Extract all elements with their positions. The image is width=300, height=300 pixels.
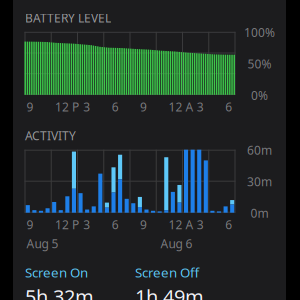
- staticText: 9: [26, 217, 33, 233]
- staticText: 100%: [244, 24, 275, 40]
- staticText: 1h 49m: [135, 283, 204, 300]
- staticText: BATTERY LEVEL: [25, 10, 111, 26]
- staticText: 0%: [251, 87, 268, 103]
- staticText: 0m: [250, 205, 268, 221]
- staticText: 9: [140, 99, 147, 115]
- staticText: 12 A: [168, 99, 193, 115]
- staticText: 30m: [247, 174, 272, 190]
- staticText: 60m: [247, 142, 272, 158]
- staticText: 3: [197, 99, 204, 115]
- staticText: 9: [26, 99, 33, 115]
- staticText: 12 A: [168, 217, 193, 233]
- staticText: Aug 5: [26, 236, 58, 251]
- staticText: 12 P: [55, 99, 79, 115]
- staticText: Screen On: [25, 264, 88, 281]
- button[interactable]: Screen On: [25, 264, 135, 300]
- staticText: 6: [225, 217, 232, 233]
- staticText: Screen Off: [135, 264, 199, 281]
- staticText: 12 P: [55, 217, 79, 233]
- staticText: 3: [83, 99, 90, 115]
- staticText: 9: [140, 217, 147, 233]
- staticText: 6: [112, 217, 119, 233]
- staticText: 6: [225, 99, 232, 115]
- button[interactable]: Screen Off: [135, 264, 245, 300]
- staticText: 3: [83, 217, 90, 233]
- staticText: 50%: [247, 56, 271, 72]
- staticText: 3: [197, 217, 204, 233]
- staticText: ACTIVITY: [25, 128, 76, 144]
- staticText: 5h 32m: [25, 283, 94, 300]
- staticText: 6: [112, 99, 119, 115]
- staticText: Aug 6: [160, 236, 192, 251]
